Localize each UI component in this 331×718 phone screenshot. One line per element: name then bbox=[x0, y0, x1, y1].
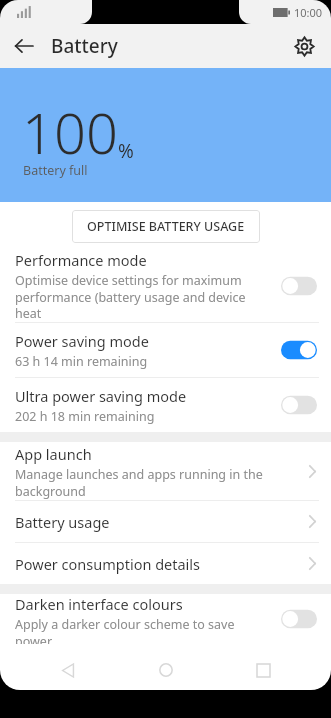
staticText: 202 h 18 min remaining bbox=[15, 408, 155, 425]
staticText: Performance mode bbox=[15, 250, 147, 270]
staticText: 100 bbox=[22, 94, 118, 170]
staticText: 10:00 bbox=[294, 5, 323, 20]
staticText: Battery full bbox=[23, 162, 88, 179]
staticText: Manage launches and apps running in the … bbox=[15, 466, 263, 499]
button[interactable]: Battery usage bbox=[0, 501, 331, 542]
staticText: Battery usage bbox=[15, 512, 110, 532]
staticText: App launch bbox=[15, 444, 92, 464]
staticText: Ultra power saving mode bbox=[15, 386, 187, 406]
staticText: 63 h 14 min remaining bbox=[15, 353, 148, 370]
button[interactable]: Recent apps bbox=[247, 654, 279, 686]
button[interactable]: Performance mode bbox=[0, 250, 331, 322]
button[interactable]: Back bbox=[4, 26, 44, 66]
button[interactable]: OPTIMISE BATTERY USAGE bbox=[72, 210, 260, 243]
button[interactable]: Ultra power saving mode bbox=[0, 378, 331, 432]
button[interactable]: Power consumption details bbox=[0, 543, 331, 584]
staticText: Power saving mode bbox=[15, 331, 149, 351]
staticText: Darken interface colours bbox=[15, 594, 183, 614]
button[interactable]: Power saving mode bbox=[0, 323, 331, 377]
staticText: Power consumption details bbox=[15, 554, 201, 574]
staticText: Apply a darker colour scheme to save pow… bbox=[15, 616, 253, 644]
staticText: % bbox=[118, 138, 134, 164]
button[interactable]: App launch bbox=[0, 442, 331, 500]
button[interactable]: Home bbox=[150, 654, 182, 686]
staticText: Optimise device settings for maximum per… bbox=[15, 272, 253, 322]
button[interactable]: Settings bbox=[283, 25, 325, 67]
staticText: OPTIMISE BATTERY USAGE bbox=[87, 218, 245, 235]
button[interactable]: Darken interface colours bbox=[0, 594, 331, 644]
button[interactable]: Back bbox=[52, 654, 84, 686]
staticText: Battery bbox=[51, 33, 118, 59]
